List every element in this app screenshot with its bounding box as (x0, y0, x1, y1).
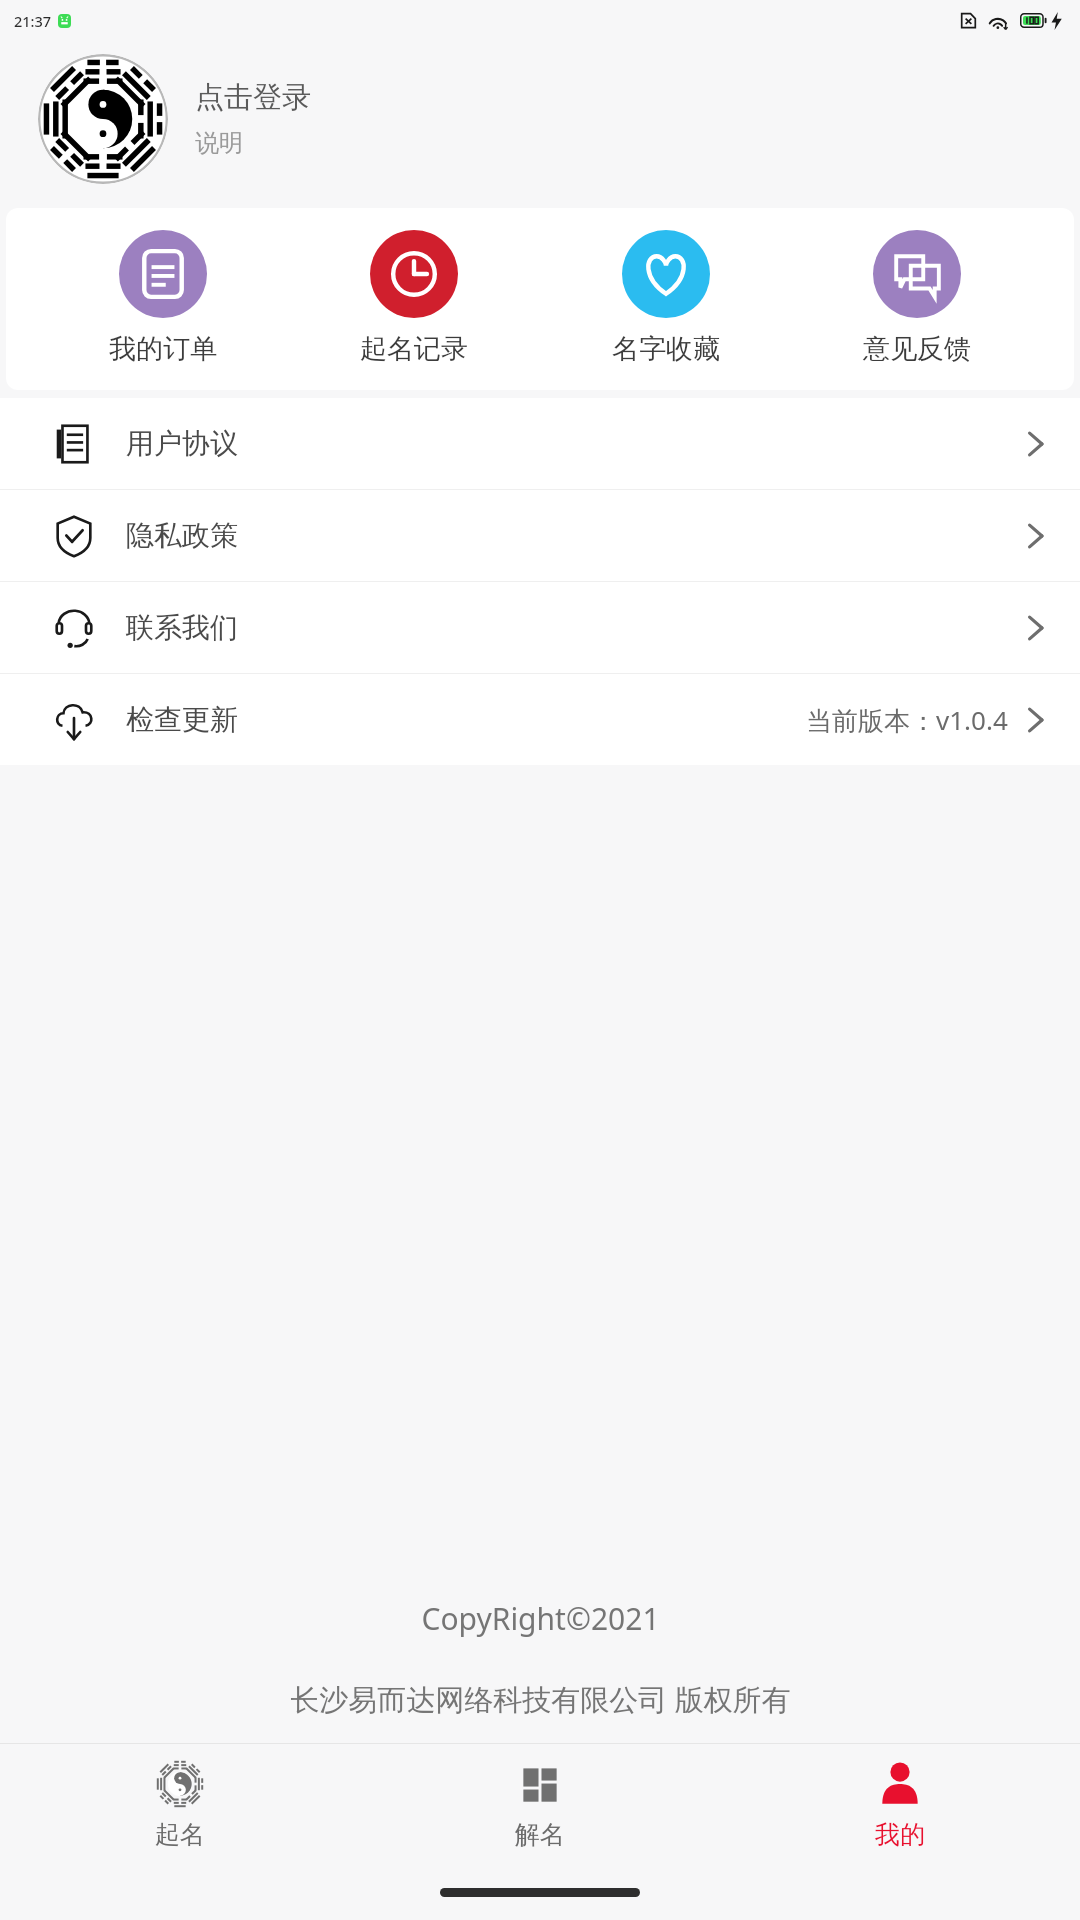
staticText: 我的订单 (109, 332, 217, 366)
staticText: 名字收藏 (612, 332, 720, 366)
button[interactable]: 用户协议 (0, 398, 1080, 489)
button[interactable]: 起名记录 (319, 230, 509, 366)
button[interactable]: 隐私政策 (0, 490, 1080, 581)
staticText: 我的 (875, 1819, 925, 1850)
button[interactable]: 我的订单 (68, 230, 258, 366)
staticText: 隐私政策 (126, 518, 238, 553)
button[interactable]: 名字收藏 (571, 230, 761, 366)
button[interactable]: 解名 (360, 1744, 720, 1864)
button[interactable]: 意见反馈 (822, 230, 1012, 366)
staticText: 起名记录 (360, 332, 468, 366)
staticText: 联系我们 (126, 610, 238, 645)
staticText: 起名 (155, 1819, 205, 1850)
staticText: 用户协议 (126, 426, 238, 461)
staticText: 点击登录 (195, 79, 311, 116)
button[interactable]: 点击登录 (0, 41, 1080, 196)
staticText: 长沙易而达网络科技有限公司 版权所有 (290, 1679, 791, 1719)
staticText: CopyRight©2021 (421, 1598, 660, 1639)
staticText: 意见反馈 (863, 332, 971, 366)
staticText: 检查更新 (126, 702, 238, 737)
button[interactable]: 联系我们 (0, 582, 1080, 673)
staticText: 21:37 (14, 11, 52, 31)
staticText: 说明 (195, 128, 243, 158)
staticText: 解名 (515, 1819, 565, 1850)
button[interactable]: 起名 (0, 1744, 360, 1864)
button[interactable]: 我的 (720, 1744, 1080, 1864)
button[interactable]: 检查更新 (0, 674, 1080, 765)
staticText: 当前版本：v1.0.4 (806, 702, 1008, 738)
